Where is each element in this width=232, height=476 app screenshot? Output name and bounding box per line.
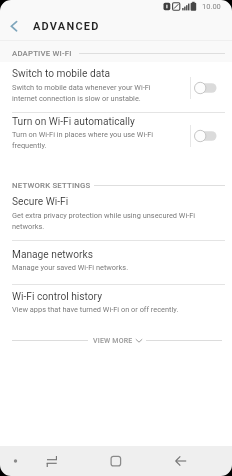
staticText: Switch to mobile data whenever your Wi-F…	[12, 83, 151, 103]
button[interactable]	[0, 13, 60, 41]
button[interactable]	[0, 332, 232, 349]
staticText: Get extra privacy protection while using…	[12, 211, 196, 231]
staticText: 10.00	[202, 2, 221, 11]
button[interactable]	[100, 448, 131, 474]
staticText: Turn on Wi-Fi automatically	[12, 116, 135, 128]
staticText: Manage your saved Wi-Fi networks.	[12, 263, 129, 272]
staticText: NETWORK SETTINGS	[12, 181, 91, 190]
button[interactable]	[0, 191, 232, 240]
button[interactable]	[0, 285, 232, 327]
staticText: ADAPTIVE WI-FI	[12, 49, 72, 58]
button[interactable]	[0, 113, 232, 163]
staticText: Wi-Fi control history	[12, 291, 102, 303]
button[interactable]	[0, 62, 232, 112]
staticText: Switch to mobile data	[12, 68, 111, 80]
staticText: Manage networks	[12, 249, 93, 261]
staticText: View apps that have turned Wi-Fi on or o…	[12, 305, 179, 314]
staticText: ADVANCED	[33, 20, 100, 33]
staticText: Turn on Wi-Fi in places where you use Wi…	[12, 130, 154, 150]
button[interactable]	[165, 448, 196, 474]
button[interactable]	[36, 448, 67, 474]
button[interactable]	[0, 241, 232, 284]
staticText: VIEW MORE	[93, 337, 133, 345]
staticText: Secure Wi-Fi	[12, 196, 69, 208]
